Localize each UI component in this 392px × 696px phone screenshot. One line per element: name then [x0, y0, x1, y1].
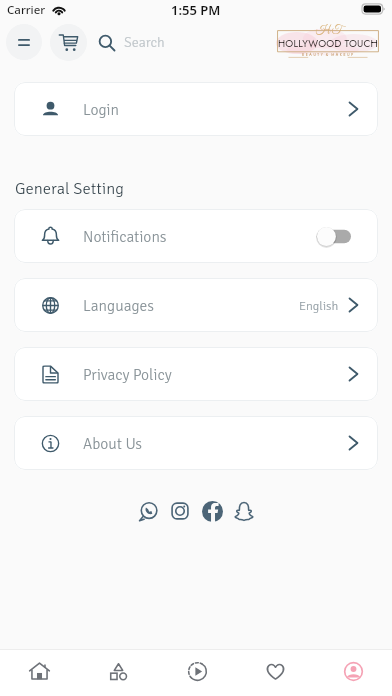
staticText: 1:55 PM [171, 1, 221, 19]
staticText: Languages [83, 296, 155, 315]
staticText: Login [83, 100, 119, 119]
staticText: Search [124, 34, 165, 51]
button[interactable]: Instagram [164, 495, 196, 527]
staticText: About Us [83, 434, 143, 453]
staticText: Carrier [7, 2, 46, 18]
button[interactable]: Menu [6, 24, 42, 60]
button[interactable]: Cart [50, 24, 87, 61]
button[interactable]: Languages [14, 278, 378, 332]
button[interactable]: Login [14, 82, 378, 136]
button[interactable]: Notifications [14, 209, 378, 263]
button[interactable]: Profile [314, 650, 392, 696]
staticText: HOLLYWOOD TOUCH [278, 36, 378, 50]
staticText: English [299, 298, 339, 313]
staticText: B E A U T Y & M A K E U P [302, 52, 354, 57]
button[interactable]: Snapchat [228, 495, 260, 527]
staticText: Notifications [83, 227, 167, 246]
button[interactable]: Categories [79, 650, 158, 696]
staticText: Privacy Policy [83, 365, 172, 384]
button[interactable]: Facebook [196, 495, 228, 527]
button[interactable]: About Us [14, 416, 378, 470]
button[interactable]: Privacy Policy [14, 347, 378, 401]
button[interactable]: Home [0, 650, 79, 696]
button[interactable]: Favourites [236, 650, 314, 696]
button[interactable]: Hollywood Touch [276, 22, 380, 62]
staticText: H T [316, 24, 341, 37]
button[interactable]: WhatsApp [132, 495, 164, 527]
button[interactable]: Search [99, 34, 165, 51]
button[interactable]: Videos [158, 650, 236, 696]
staticText: General Setting [15, 178, 124, 198]
